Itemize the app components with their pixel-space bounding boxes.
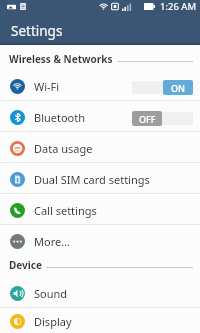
staticText: OFF bbox=[139, 113, 156, 125]
button[interactable]: Display bbox=[0, 308, 200, 333]
staticText: Display bbox=[34, 314, 72, 329]
button[interactable]: Dual SIM card settings bbox=[0, 163, 200, 194]
staticText: Bluetooth bbox=[34, 110, 86, 125]
staticText: Wi-Fi bbox=[34, 79, 60, 94]
button[interactable]: Sound bbox=[0, 277, 200, 308]
staticText: Settings bbox=[11, 22, 63, 40]
staticText: Call settings bbox=[34, 203, 97, 218]
button[interactable]: Call settings bbox=[0, 194, 200, 225]
button[interactable]: More… bbox=[0, 225, 200, 256]
staticText: Wireless & Networks bbox=[9, 52, 113, 66]
staticText: 1:26 AM bbox=[160, 0, 197, 13]
staticText: Device bbox=[9, 258, 42, 272]
staticText: ON bbox=[171, 82, 186, 94]
staticText: More… bbox=[34, 234, 70, 249]
button[interactable]: Bluetooth bbox=[0, 101, 200, 132]
staticText: Dual SIM card settings bbox=[34, 172, 150, 187]
staticText: Sound bbox=[34, 286, 68, 301]
button[interactable]: Data usage bbox=[0, 132, 200, 163]
button[interactable]: Wi-Fi bbox=[0, 70, 200, 101]
staticText: Data usage bbox=[34, 141, 93, 156]
